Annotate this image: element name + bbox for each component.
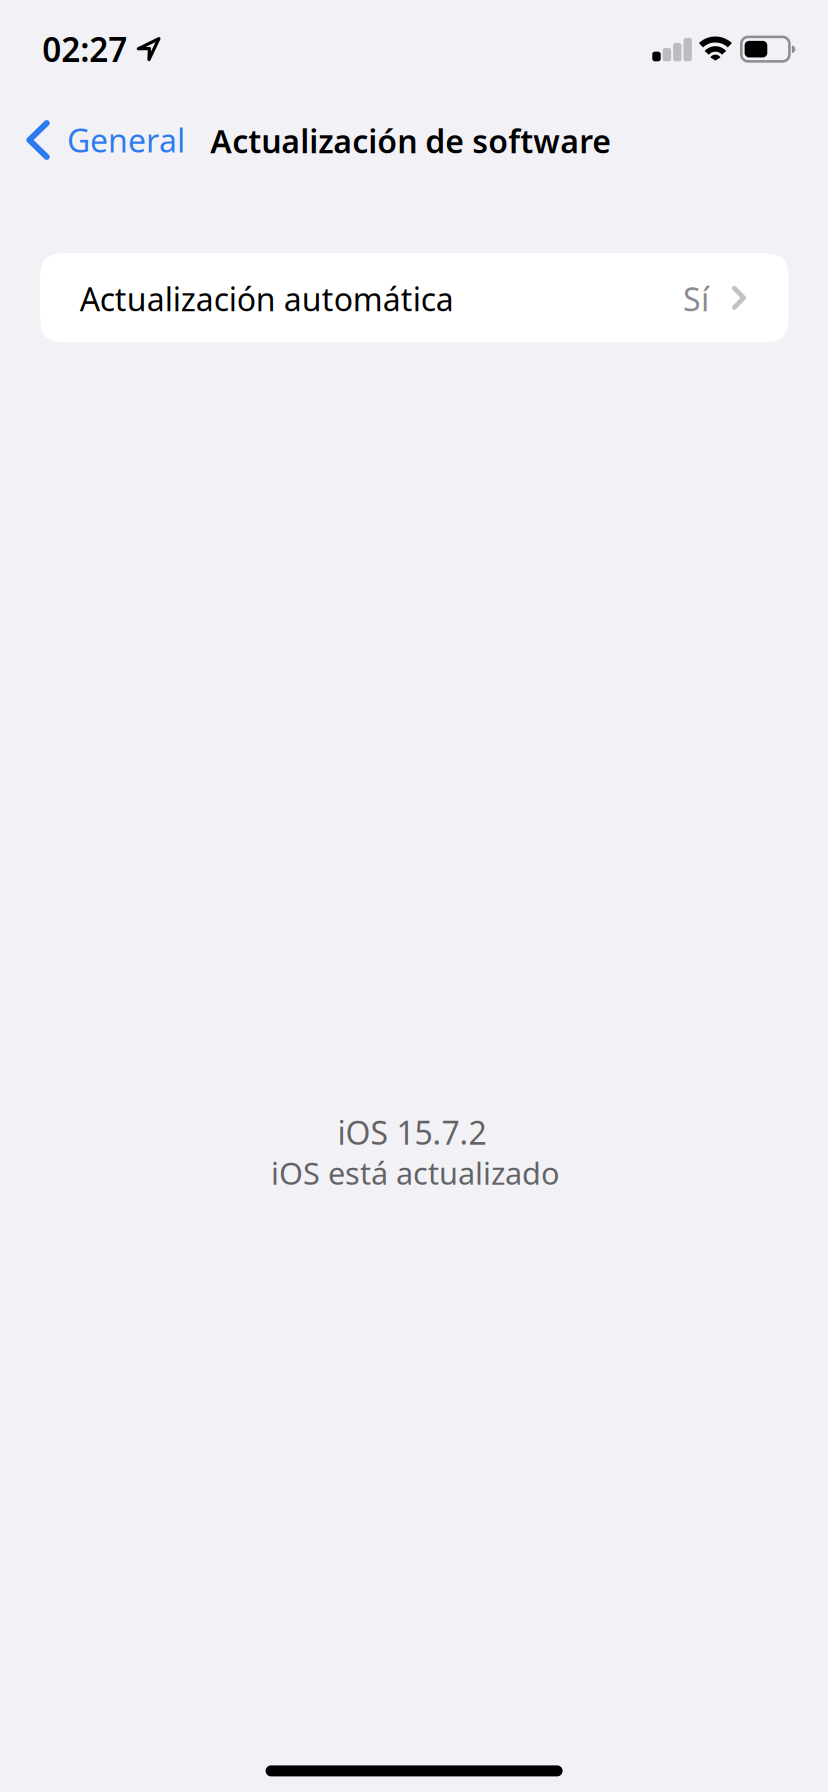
staticText: iOS está actualizado	[271, 1152, 560, 1193]
button[interactable]: Back to General	[0, 96, 209, 184]
staticText: 02:27	[42, 27, 127, 71]
staticText: Actualización automática	[80, 278, 454, 320]
staticText: Actualización de software	[210, 120, 611, 162]
button[interactable]: Actualización automática	[40, 253, 789, 342]
staticText: iOS 15.7.2	[337, 1111, 486, 1154]
staticText: General	[67, 119, 185, 161]
staticText: Sí	[683, 278, 709, 320]
